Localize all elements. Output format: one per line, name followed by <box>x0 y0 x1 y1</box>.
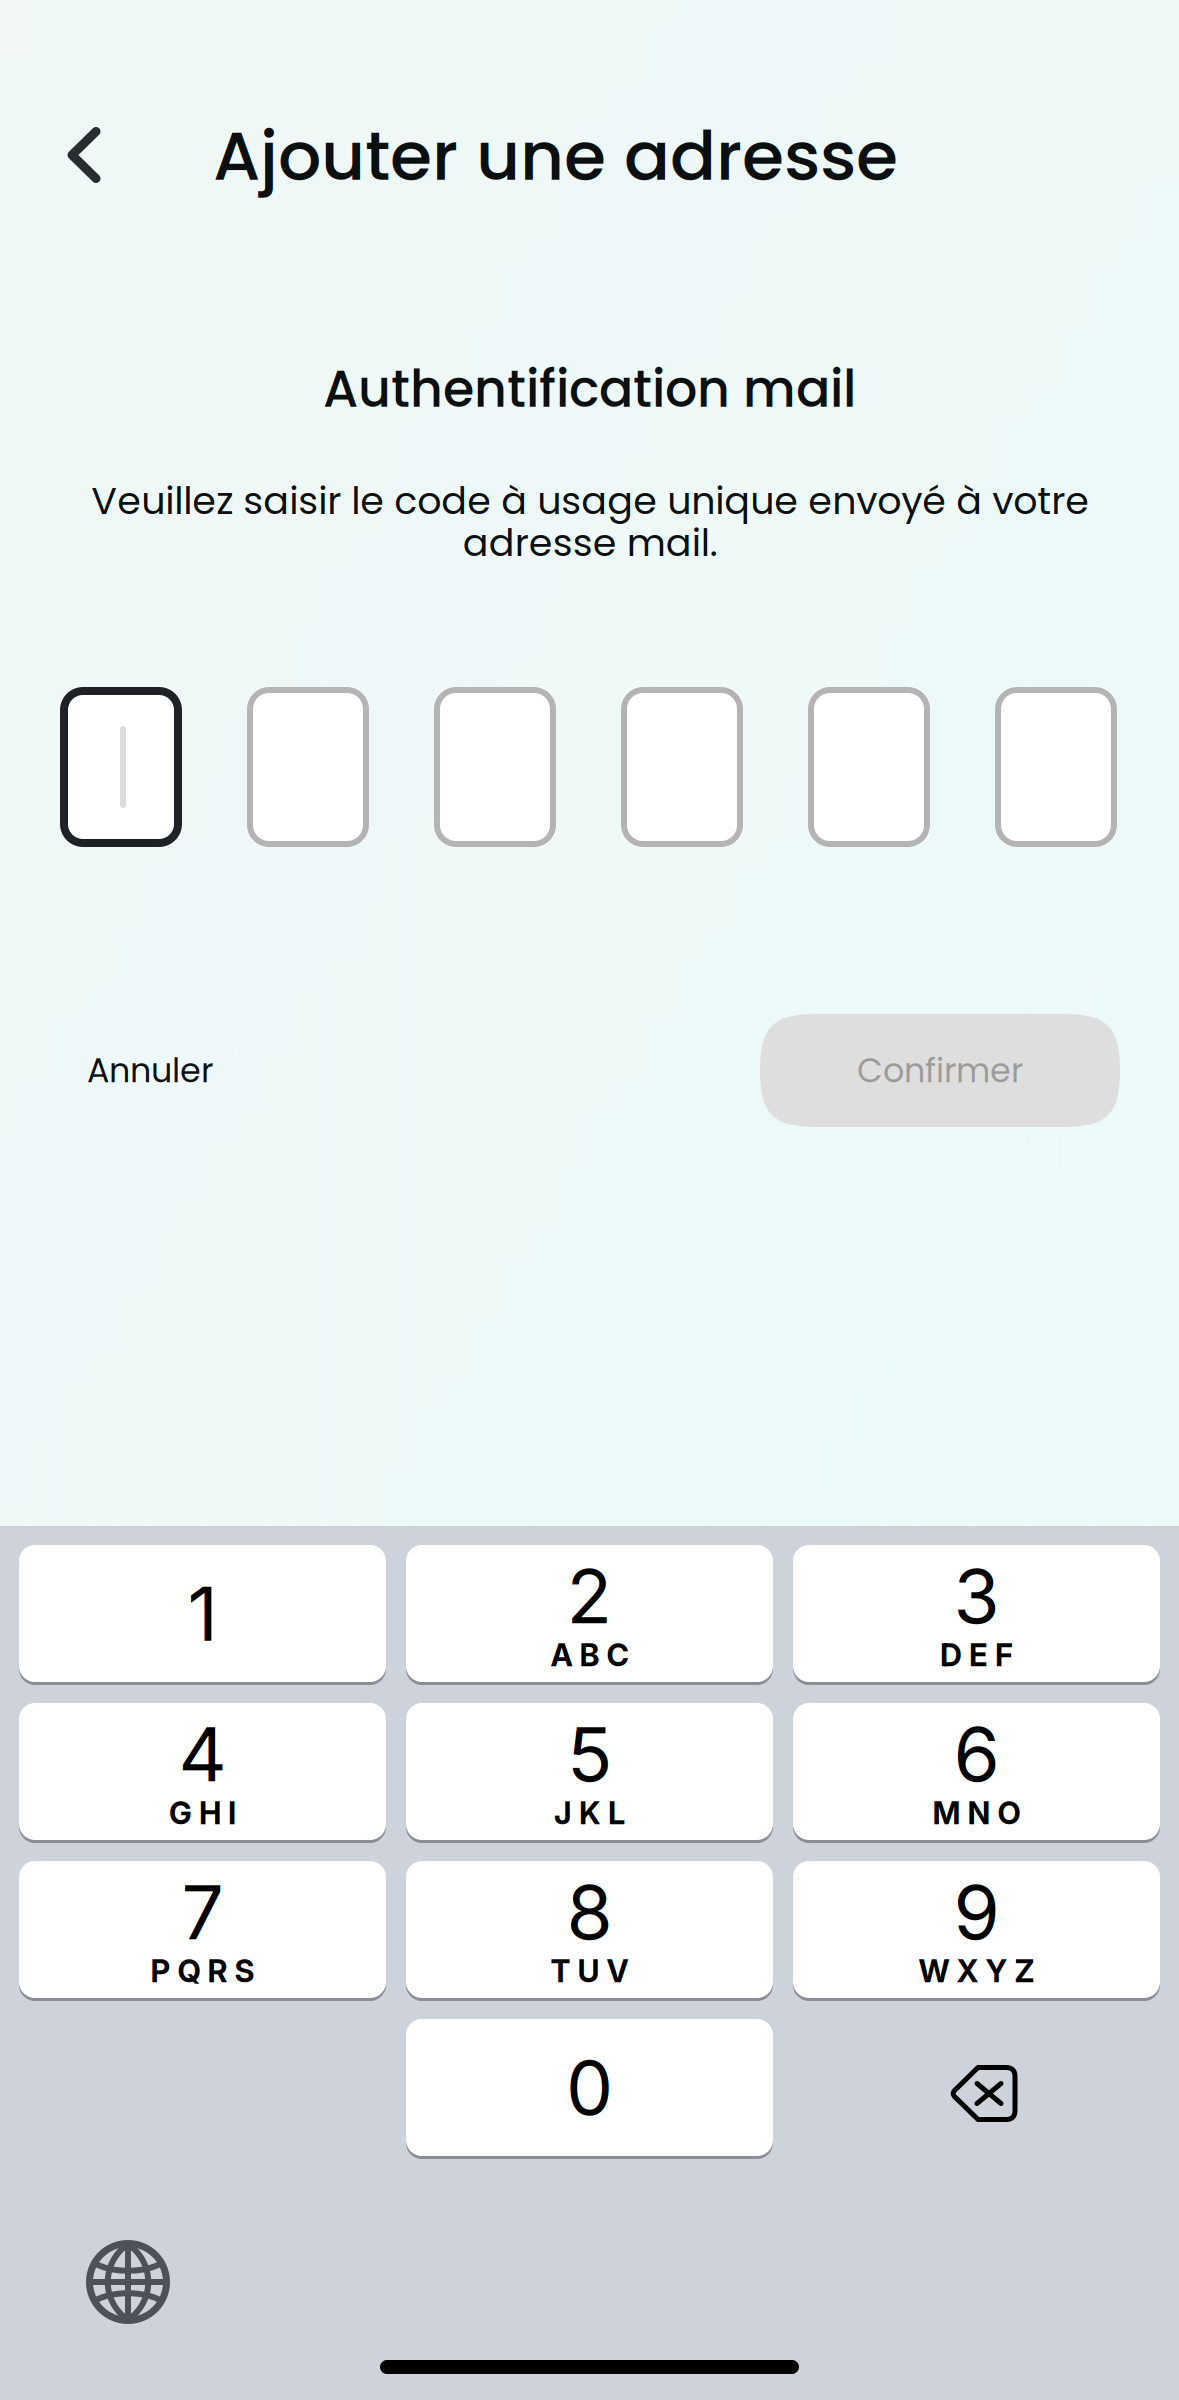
staticText: 4 <box>178 1709 226 1799</box>
staticText: 3 <box>953 1551 999 1641</box>
button[interactable]: 9 <box>793 1861 1160 2001</box>
button[interactable]: 8 <box>406 1861 773 2001</box>
staticText: 0 <box>566 2042 613 2133</box>
button[interactable]: 1 <box>19 1545 386 1685</box>
staticText: Authentification mail <box>323 353 856 424</box>
staticText: 6 <box>953 1709 999 1799</box>
staticText: 1 <box>187 1568 217 1659</box>
button[interactable]: 3 <box>793 1545 1160 1685</box>
staticText: W X Y Z <box>918 1952 1034 1989</box>
staticText: 5 <box>567 1709 612 1799</box>
staticText: G H I <box>169 1794 236 1831</box>
staticText: J K L <box>554 1794 625 1831</box>
staticText: D E F <box>940 1636 1013 1673</box>
staticText: T U V <box>550 1952 628 1989</box>
staticText: P Q R S <box>150 1952 254 1989</box>
staticText: Veuillez saisir le code à usage unique e… <box>91 474 1089 569</box>
staticText: 7 <box>181 1867 223 1957</box>
button[interactable]: 5 <box>406 1703 773 1843</box>
button[interactable]: 2 <box>406 1545 773 1685</box>
staticText: 8 <box>566 1867 612 1957</box>
staticText: Ajouter une adresse <box>213 108 898 204</box>
staticText: A B C <box>550 1636 628 1673</box>
staticText: Confirmer <box>857 1047 1023 1094</box>
staticText: 2 <box>566 1551 612 1641</box>
button[interactable]: Annuler <box>58 1014 318 1127</box>
button[interactable]: Retour <box>28 97 140 213</box>
staticText: M N O <box>932 1794 1020 1831</box>
button[interactable]: Confirmer <box>760 1014 1120 1127</box>
button[interactable]: 0 <box>406 2019 773 2159</box>
button[interactable]: Supprimer <box>800 2025 1167 2162</box>
button[interactable]: 6 <box>793 1703 1160 1843</box>
button[interactable]: 4 <box>19 1703 386 1843</box>
staticText: 9 <box>953 1867 999 1957</box>
button[interactable]: 7 <box>19 1861 386 2001</box>
staticText: Annuler <box>87 1047 213 1094</box>
button[interactable]: Changer de clavier <box>46 2220 210 2344</box>
